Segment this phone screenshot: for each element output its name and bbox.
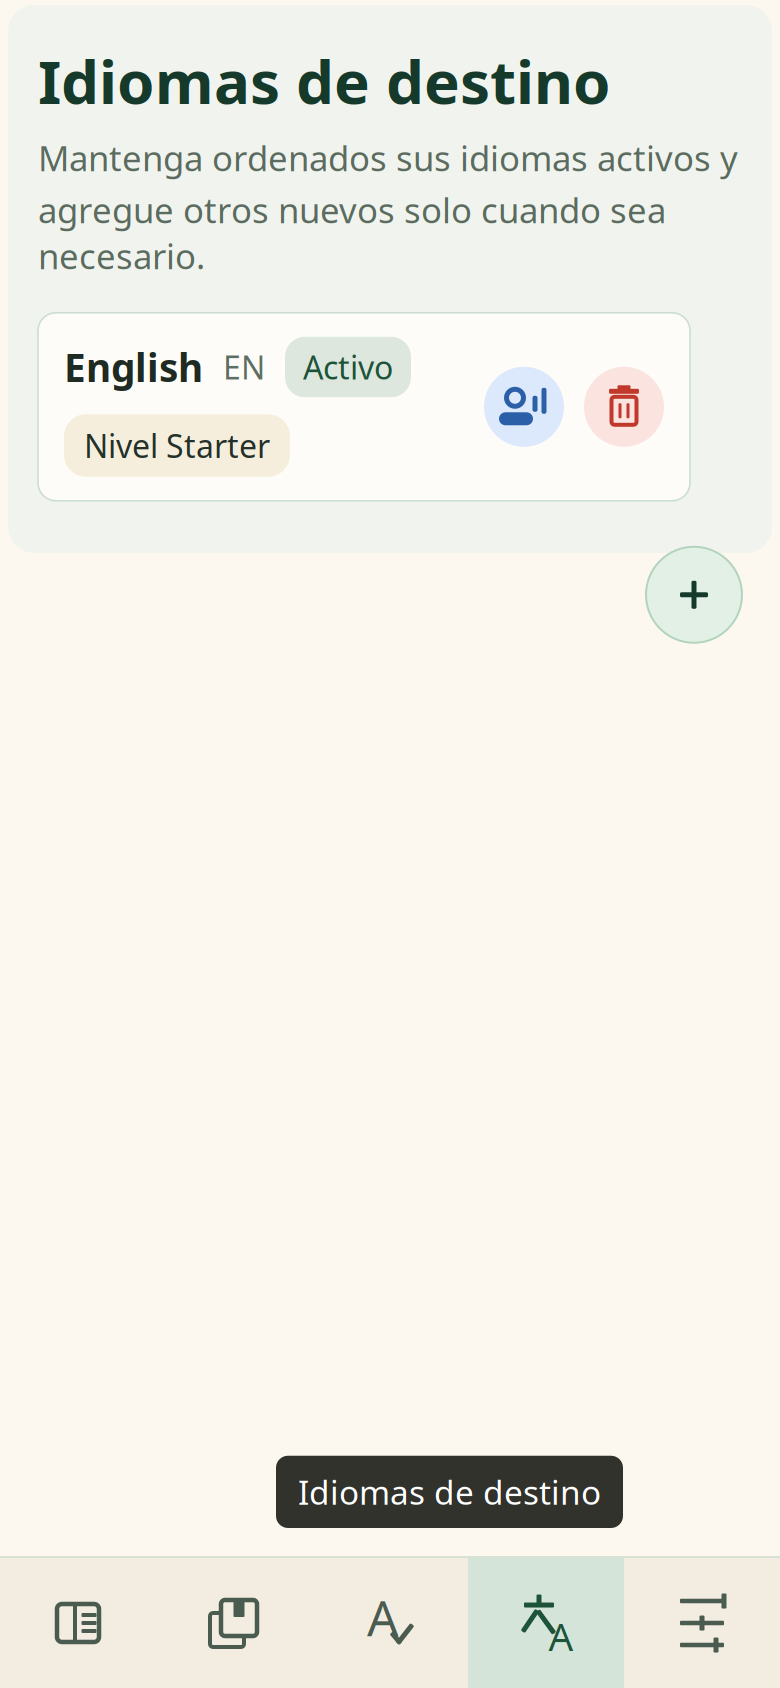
staticText: agregue otros nuevos solo cuando sea nec… bbox=[38, 187, 666, 279]
staticText: A bbox=[548, 1610, 573, 1662]
staticText: Activo bbox=[303, 346, 393, 388]
button[interactable]: Agregar idioma bbox=[646, 547, 742, 643]
button[interactable]: Idiomas de destino bbox=[468, 1558, 624, 1688]
staticText: EN bbox=[223, 346, 265, 388]
button[interactable]: Ajustes bbox=[624, 1558, 780, 1688]
staticText: Nivel Starter bbox=[84, 424, 270, 467]
staticText: Idiomas de destino bbox=[38, 41, 611, 121]
button[interactable]: Biblioteca bbox=[156, 1558, 312, 1688]
button[interactable]: Lectura bbox=[0, 1558, 156, 1688]
staticText: English bbox=[64, 341, 203, 393]
button[interactable]: Eliminar idioma bbox=[584, 367, 664, 447]
button[interactable]: Revisión bbox=[312, 1558, 468, 1688]
staticText: Mantenga ordenados sus idiomas activos y bbox=[38, 135, 738, 181]
staticText: Idiomas de destino bbox=[298, 1470, 601, 1514]
button[interactable]: English bbox=[38, 313, 690, 501]
button[interactable]: Pronunciación bbox=[484, 367, 564, 447]
staticText: A bbox=[367, 1584, 399, 1650]
